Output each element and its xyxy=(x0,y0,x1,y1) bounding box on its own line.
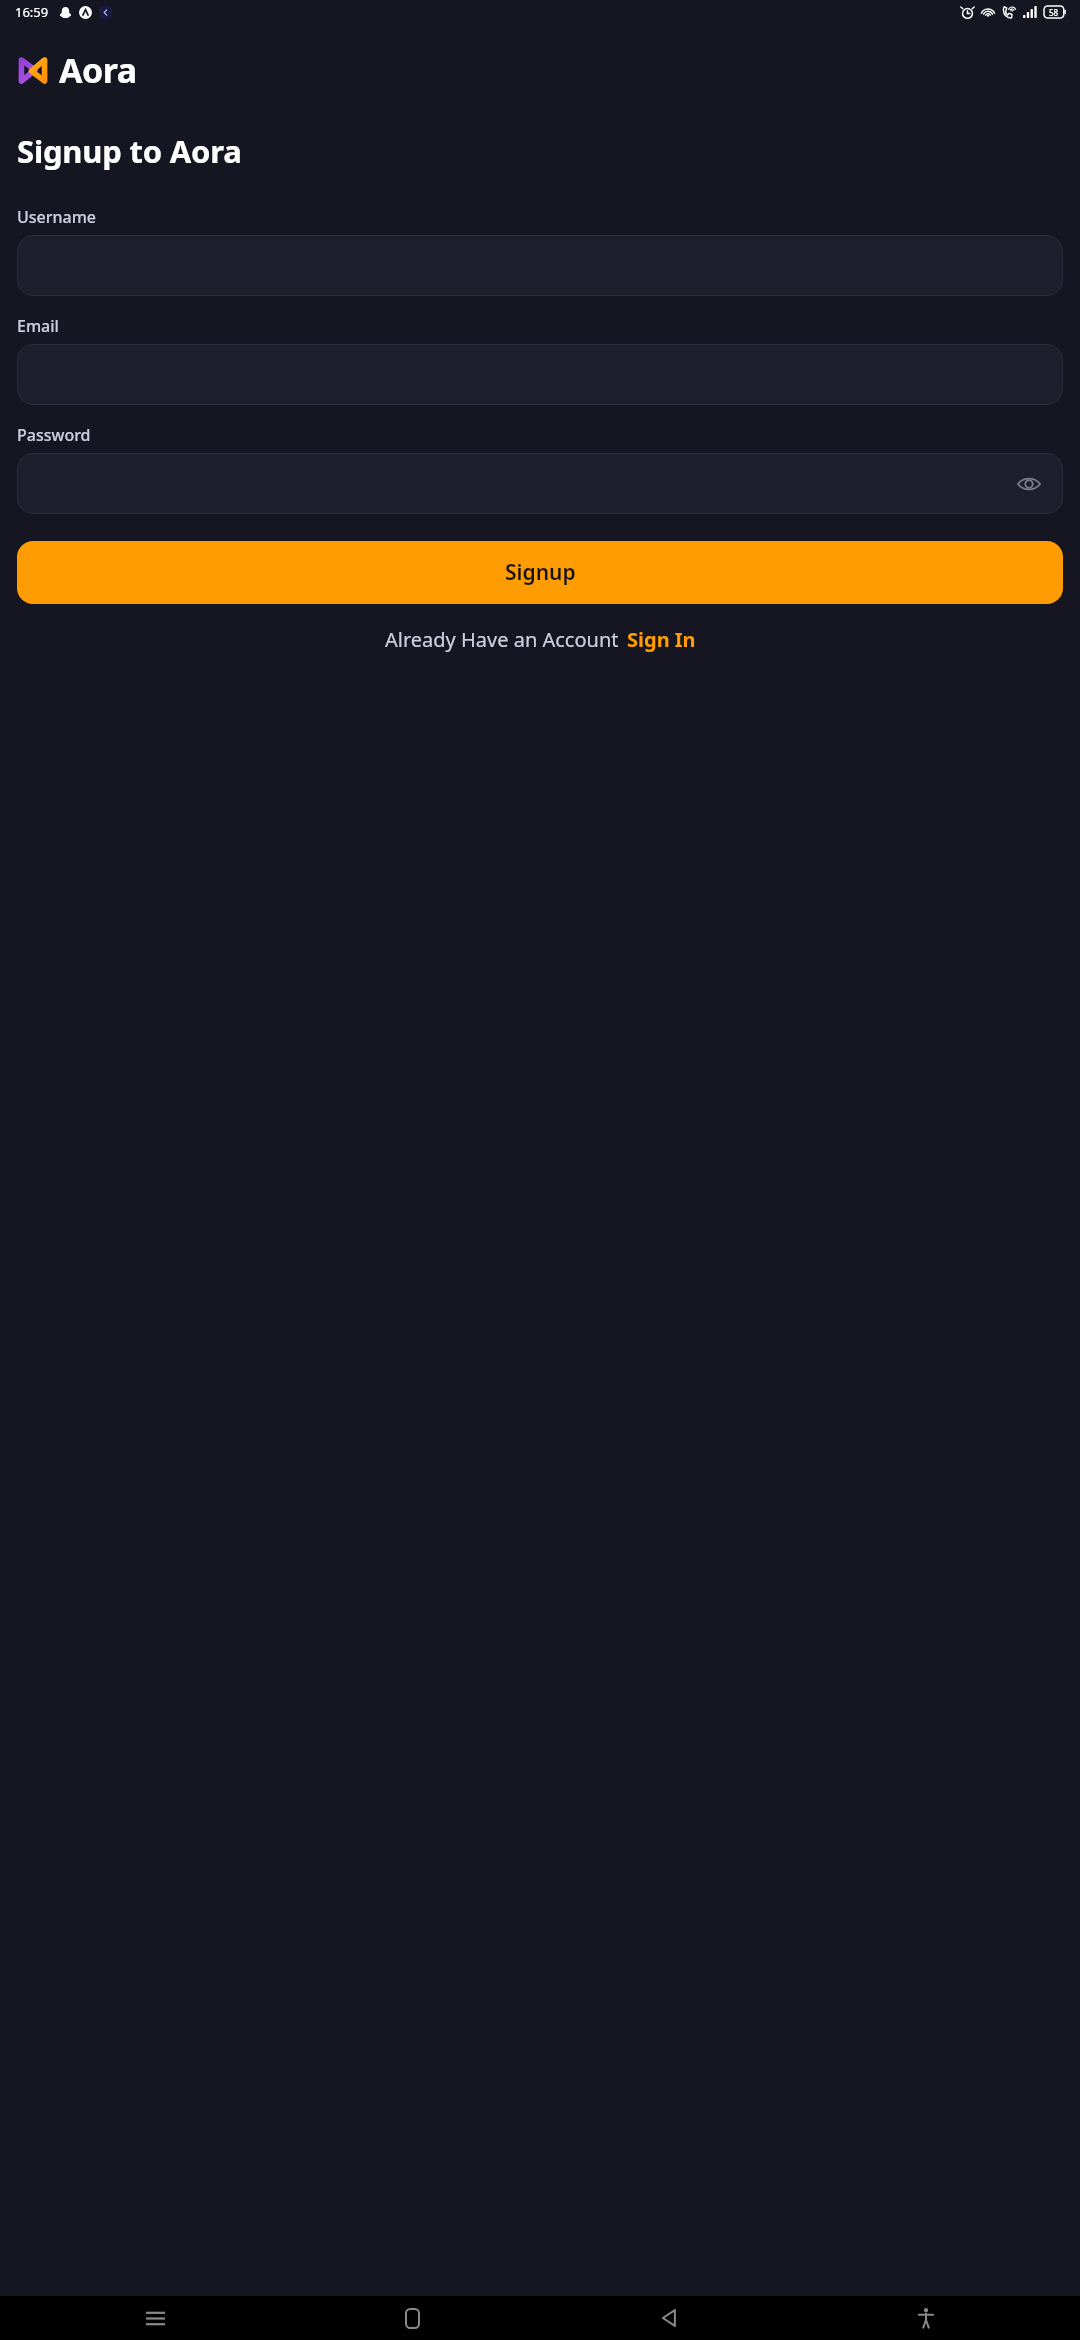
button[interactable]: Sign In xyxy=(627,626,696,653)
staticText: Signup xyxy=(505,558,576,587)
button[interactable]: Show password xyxy=(1011,466,1047,502)
staticText: Aora xyxy=(59,47,137,93)
button[interactable]: Show password xyxy=(17,453,1063,514)
staticText: 16:59 xyxy=(15,3,49,21)
staticText: Email xyxy=(17,315,59,337)
staticText: Sign In xyxy=(627,626,696,653)
button[interactable]: Home xyxy=(388,2296,436,2340)
staticText: Already Have an Account xyxy=(385,626,619,653)
staticText: Username xyxy=(17,206,97,228)
staticText: Signup to Aora xyxy=(17,130,242,172)
button[interactable]: Signup xyxy=(17,541,1063,604)
button[interactable]: Back xyxy=(645,2296,693,2340)
staticText: Password xyxy=(17,424,91,446)
staticText: 58 xyxy=(1049,7,1059,18)
button[interactable]: Accessibility xyxy=(902,2296,950,2340)
button[interactable]: Recents xyxy=(131,2296,179,2340)
